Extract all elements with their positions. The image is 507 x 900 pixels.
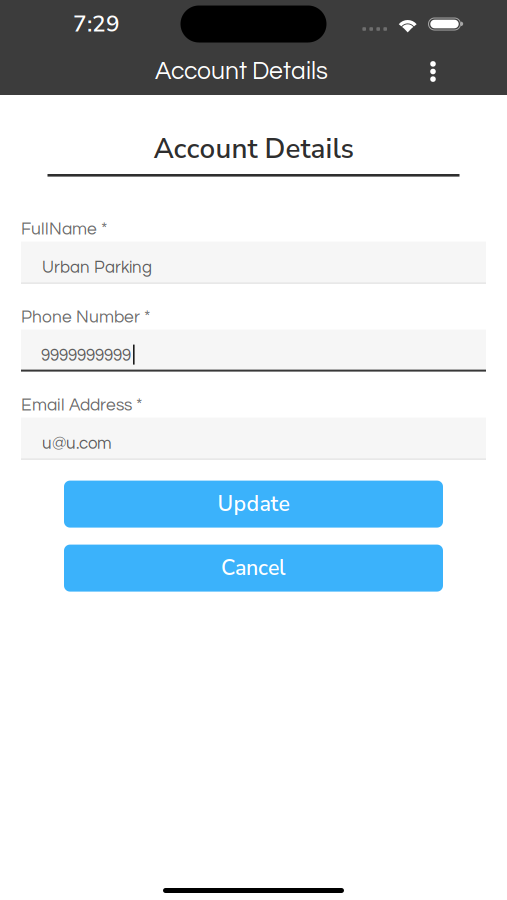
staticText: Urban Parking [42, 259, 152, 276]
staticText: Phone Number * [21, 308, 150, 326]
button[interactable]: More options [410, 48, 456, 95]
staticText: FullName * [21, 220, 107, 238]
staticText: 7:29 [73, 8, 120, 39]
button[interactable]: Cancel [64, 545, 443, 592]
button[interactable]: Update [64, 481, 443, 528]
staticText: Email Address * [21, 396, 142, 414]
staticText: Account Details [155, 59, 328, 84]
staticText: u@u.com [42, 435, 112, 452]
staticText: 9999999999 [41, 347, 131, 364]
staticText: Account Details [153, 130, 353, 168]
staticText: Cancel [221, 554, 286, 583]
staticText: Update [217, 490, 289, 519]
